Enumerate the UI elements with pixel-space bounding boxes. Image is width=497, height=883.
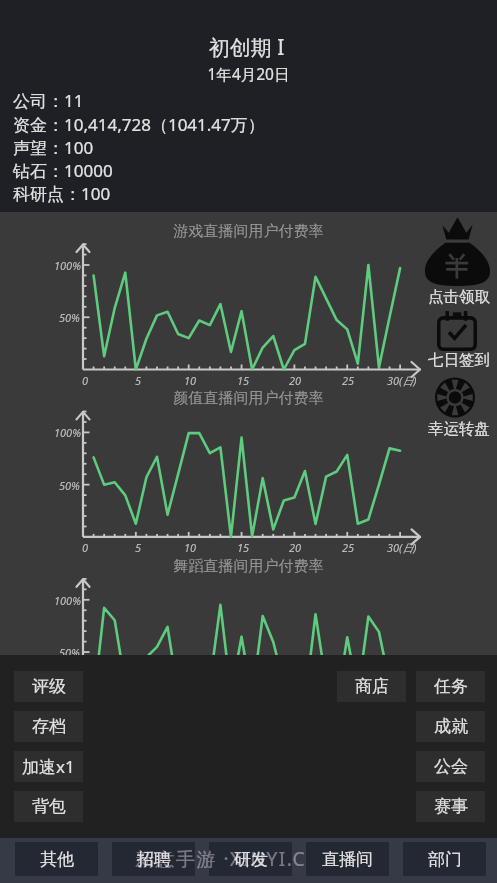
button[interactable]: 存档 — [14, 711, 83, 742]
staticText: 0 — [82, 373, 89, 388]
staticText: 25 — [342, 540, 355, 555]
button[interactable]: 背包 — [14, 791, 83, 822]
staticText: 存档 — [32, 716, 66, 737]
staticText: 科研点：100 — [13, 182, 111, 205]
staticText: 30(日) — [387, 540, 417, 555]
staticText: 100% — [54, 425, 81, 440]
button[interactable]: 成就 — [416, 711, 485, 742]
staticText: 50% — [59, 478, 80, 493]
button[interactable]: 商店 — [337, 671, 406, 702]
staticText: 评级 — [32, 676, 66, 697]
button[interactable]: 公会 — [416, 751, 485, 782]
staticText: 任务 — [434, 676, 468, 697]
staticText: 100% — [54, 258, 81, 273]
staticText: 15 — [237, 373, 250, 388]
button[interactable]: 七日签到 — [421, 309, 497, 371]
staticText: 成就 — [434, 716, 468, 737]
staticText: 公会 — [434, 756, 468, 777]
staticText: 招聘 — [137, 849, 171, 870]
staticText: 50% — [59, 310, 80, 325]
staticText: 赛事 — [434, 796, 468, 817]
button[interactable]: 赛事 — [416, 791, 485, 822]
staticText: 新意手游 ·XINYI.C — [135, 846, 306, 872]
button[interactable]: 加速x1 — [14, 751, 83, 782]
staticText: 加速x1 — [22, 755, 75, 778]
staticText: 5 — [135, 373, 142, 388]
staticText: 部门 — [428, 849, 462, 870]
staticText: 舞蹈直播间用户付费率 — [0, 557, 497, 576]
staticText: 0 — [82, 540, 89, 555]
staticText: 幸运转盘 — [421, 419, 497, 439]
staticText: 钻石：10000 — [13, 159, 113, 182]
staticText: 研发 — [234, 849, 268, 870]
button[interactable]: 幸运转盘 — [421, 377, 497, 439]
staticText: 50% — [59, 645, 80, 655]
staticText: 声望：100 — [13, 136, 94, 159]
staticText: 商店 — [355, 676, 389, 697]
staticText: 15 — [237, 540, 250, 555]
staticText: 公司：11 — [13, 89, 84, 112]
staticText: 直播间 — [322, 849, 373, 870]
staticText: 5 — [135, 540, 142, 555]
staticText: 其他 — [40, 849, 74, 870]
staticText: 点击领取 — [421, 287, 497, 307]
staticText: 30(日) — [387, 373, 417, 388]
staticText: 初创期 I — [0, 33, 495, 62]
staticText: 游戏直播间用户付费率 — [0, 222, 497, 241]
button[interactable]: 评级 — [14, 671, 83, 702]
staticText: 100% — [54, 593, 81, 608]
staticText: 七日签到 — [421, 350, 497, 370]
staticText: 1年4月20日 — [0, 63, 497, 84]
button[interactable]: 部门 — [403, 842, 486, 876]
button[interactable]: 点击领取 — [421, 213, 497, 305]
button[interactable]: 任务 — [416, 671, 485, 702]
button[interactable]: 其他 — [15, 842, 98, 876]
staticText: 10 — [184, 540, 197, 555]
staticText: 颜值直播间用户付费率 — [0, 389, 497, 408]
staticText: 25 — [342, 373, 355, 388]
staticText: 10 — [184, 373, 197, 388]
button[interactable]: 研发 — [209, 842, 292, 876]
staticText: 20 — [289, 373, 302, 388]
staticText: 20 — [289, 540, 302, 555]
staticText: 资金：10,414,728（1041.47万） — [13, 113, 265, 136]
button[interactable]: 直播间 — [306, 842, 389, 876]
staticText: 背包 — [32, 796, 66, 817]
button[interactable]: 招聘 — [112, 842, 195, 876]
